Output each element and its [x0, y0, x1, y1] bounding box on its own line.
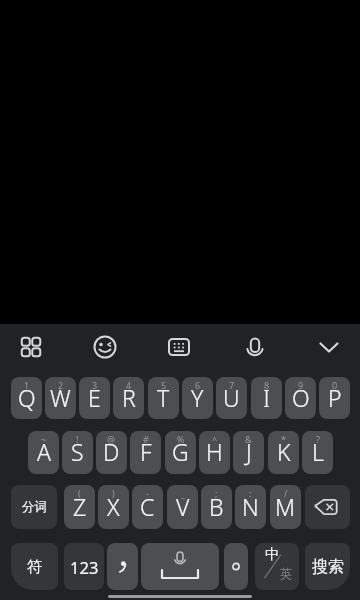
- staticText: W: [50, 382, 71, 413]
- staticText: E: [88, 382, 101, 413]
- button[interactable]: [107, 543, 138, 590]
- button[interactable]: ): [98, 485, 129, 529]
- staticText: 4: [126, 379, 132, 391]
- button[interactable]: *: [268, 431, 299, 474]
- staticText: A: [37, 436, 51, 467]
- button[interactable]: ^: [199, 431, 230, 474]
- button[interactable]: [305, 485, 350, 529]
- staticText: C: [140, 491, 155, 522]
- staticText: 2: [58, 379, 64, 391]
- button[interactable]: 0: [319, 377, 350, 419]
- staticText: ): [112, 487, 115, 499]
- button[interactable]: 搜索: [305, 543, 350, 590]
- staticText: M: [275, 491, 296, 522]
- button[interactable]: 1: [11, 377, 42, 419]
- staticText: 8: [264, 379, 270, 391]
- button[interactable]: 中: [255, 543, 299, 590]
- staticText: K: [277, 436, 291, 467]
- staticText: H: [206, 436, 223, 467]
- staticText: V: [176, 491, 190, 522]
- staticText: /: [284, 487, 288, 499]
- staticText: %: [177, 433, 185, 445]
- button[interactable]: 6: [182, 377, 213, 419]
- staticText: 7: [229, 379, 235, 391]
- staticText: P: [328, 382, 342, 413]
- button[interactable]: [313, 331, 345, 363]
- staticText: J: [246, 436, 252, 467]
- button[interactable]: !: [62, 431, 93, 474]
- staticText: 0: [332, 379, 338, 391]
- staticText: 5: [161, 379, 167, 391]
- staticText: 6: [195, 379, 201, 391]
- staticText: Z: [73, 491, 87, 522]
- button[interactable]: /: [270, 485, 301, 529]
- button[interactable]: [224, 543, 248, 590]
- staticText: _: [181, 487, 185, 499]
- button[interactable]: 符: [11, 543, 58, 590]
- staticText: ;: [215, 487, 218, 499]
- staticText: N: [242, 491, 259, 522]
- button[interactable]: ~: [28, 431, 59, 474]
- button[interactable]: 5: [148, 377, 179, 419]
- staticText: !: [76, 433, 79, 445]
- staticText: D: [103, 436, 120, 467]
- staticText: ~: [41, 433, 47, 445]
- button[interactable]: _: [167, 485, 198, 529]
- staticText: 9: [298, 379, 304, 391]
- staticText: Q: [18, 382, 36, 413]
- button[interactable]: 3: [79, 377, 110, 419]
- staticText: *: [281, 433, 286, 445]
- staticText: 123: [70, 556, 99, 578]
- button[interactable]: 2: [45, 377, 76, 419]
- button[interactable]: %: [165, 431, 196, 474]
- staticText: @: [107, 433, 116, 445]
- staticText: &: [245, 433, 252, 445]
- staticText: (: [78, 487, 81, 499]
- button[interactable]: [239, 331, 271, 363]
- button[interactable]: 9: [285, 377, 316, 419]
- staticText: 搜索: [312, 557, 344, 577]
- button[interactable]: @: [96, 431, 127, 474]
- staticText: 1: [24, 379, 30, 391]
- staticText: ?: [316, 433, 320, 445]
- staticText: U: [223, 382, 240, 413]
- staticText: O: [292, 382, 310, 413]
- staticText: ^: [212, 433, 218, 445]
- button[interactable]: &: [233, 431, 264, 474]
- button[interactable]: #: [130, 431, 161, 474]
- staticText: #: [143, 433, 149, 445]
- staticText: X: [107, 491, 120, 522]
- button[interactable]: 123: [64, 543, 104, 590]
- staticText: S: [71, 436, 84, 467]
- staticText: 分词: [22, 499, 47, 515]
- staticText: -: [146, 487, 149, 499]
- staticText: F: [140, 436, 152, 467]
- staticText: G: [172, 436, 189, 467]
- button[interactable]: 8: [251, 377, 282, 419]
- button[interactable]: 分词: [11, 485, 57, 529]
- button[interactable]: -: [132, 485, 163, 529]
- button[interactable]: [141, 543, 219, 590]
- staticText: Y: [191, 382, 204, 413]
- button[interactable]: ;: [201, 485, 232, 529]
- staticText: I: [263, 382, 271, 413]
- button[interactable]: [89, 331, 121, 363]
- staticText: 中: [265, 545, 280, 563]
- button[interactable]: :: [235, 485, 266, 529]
- button[interactable]: [163, 331, 195, 363]
- button[interactable]: 4: [113, 377, 144, 419]
- staticText: 符: [27, 557, 43, 577]
- staticText: T: [157, 382, 170, 413]
- button[interactable]: (: [64, 485, 95, 529]
- staticText: :: [249, 487, 252, 499]
- staticText: 英: [280, 566, 293, 582]
- button[interactable]: 7: [216, 377, 247, 419]
- staticText: R: [122, 382, 136, 413]
- staticText: B: [209, 491, 224, 522]
- staticText: 3: [92, 379, 98, 391]
- staticText: L: [312, 436, 324, 467]
- button[interactable]: [15, 331, 47, 363]
- button[interactable]: ?: [302, 431, 333, 474]
